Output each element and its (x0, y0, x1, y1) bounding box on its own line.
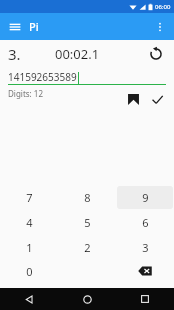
button[interactable]: Backspace (116, 260, 174, 282)
staticText: 9 (142, 190, 149, 205)
staticText: 00:02.1 (55, 45, 100, 63)
button[interactable]: Confirm (146, 89, 168, 109)
staticText: 3. (8, 44, 21, 64)
button[interactable]: 8 (59, 186, 115, 209)
button[interactable]: 3 (117, 236, 173, 259)
button[interactable]: Bookmark (122, 89, 144, 109)
button[interactable]: Recent apps (116, 288, 174, 310)
staticText: 8 (84, 190, 91, 205)
button[interactable]: Restart (144, 42, 168, 66)
button[interactable]: 0 (1, 261, 57, 281)
staticText: 7 (26, 190, 33, 205)
staticText: 1 (26, 240, 33, 255)
staticText: 141592653589 (8, 70, 77, 84)
button[interactable]: 6 (117, 211, 173, 234)
button[interactable]: 7 (1, 186, 57, 209)
button[interactable]: 4 (1, 211, 57, 234)
staticText: 06:00 (155, 3, 171, 11)
button[interactable]: 2 (59, 236, 115, 259)
staticText: 4 (26, 215, 33, 230)
button[interactable]: Open navigation menu (5, 17, 25, 37)
button[interactable]: 5 (59, 211, 115, 234)
staticText: 6 (142, 215, 149, 230)
button[interactable]: Back (0, 288, 58, 310)
button[interactable]: More options (150, 17, 170, 37)
staticText: 2 (84, 240, 91, 255)
staticText: Digits: 12 (8, 88, 43, 99)
staticText: Pi (29, 19, 39, 34)
button[interactable]: 9 (117, 186, 173, 209)
staticText: 5 (84, 215, 91, 230)
staticText: 3 (142, 240, 149, 255)
button[interactable]: 141592653589 (8, 68, 166, 84)
staticText: 0 (26, 264, 33, 279)
button[interactable]: Home (58, 288, 116, 310)
button[interactable]: 1 (1, 236, 57, 259)
